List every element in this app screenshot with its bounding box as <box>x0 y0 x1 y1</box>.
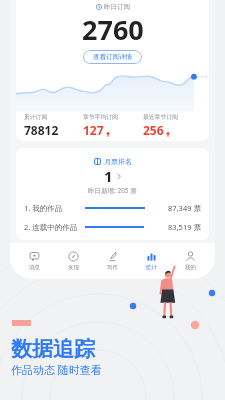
button[interactable]: 2. 连载中的作品 <box>16 221 209 232</box>
button[interactable]: 1. 我的作品 <box>16 202 209 213</box>
staticText: 87,349 票 <box>168 203 201 213</box>
staticText: 2. 连载中的作品 <box>24 222 78 232</box>
staticText: 章节平均订阅 <box>83 113 118 120</box>
staticText: 昨日订阅 <box>104 3 130 11</box>
staticText: 最近章节订阅 <box>143 113 178 120</box>
button[interactable]: 统计 <box>132 243 171 279</box>
staticText: 数据追踪 <box>11 336 95 362</box>
staticText: 发现 <box>68 264 79 271</box>
staticText: 83,519 票 <box>168 222 201 232</box>
staticText: 256 <box>143 122 164 138</box>
staticText: 累计订阅 <box>24 113 48 120</box>
staticText: 1 <box>104 166 113 186</box>
staticText: 月票排名 <box>104 157 132 166</box>
button[interactable]: 1 <box>16 166 209 186</box>
staticText: 127 <box>83 122 104 138</box>
staticText: 作品动态 随时查看 <box>11 362 102 377</box>
button[interactable]: 我的 <box>171 243 210 279</box>
button[interactable]: 写作 <box>93 243 132 279</box>
staticText: 查看订阅详情 <box>93 53 132 61</box>
staticText: 我的 <box>185 264 196 271</box>
staticText: 1. 我的作品 <box>24 203 63 213</box>
staticText: 统计 <box>146 264 157 271</box>
staticText: 消息 <box>29 264 40 271</box>
button[interactable]: 查看订阅详情 <box>83 50 142 64</box>
staticText: 2760 <box>82 11 144 48</box>
staticText: 78812 <box>24 122 59 138</box>
staticText: 写作 <box>107 264 118 271</box>
button[interactable]: 消息 <box>15 243 54 279</box>
staticText: 昨日新增: 205 票 <box>88 186 137 195</box>
button[interactable]: 发现 <box>54 243 93 279</box>
